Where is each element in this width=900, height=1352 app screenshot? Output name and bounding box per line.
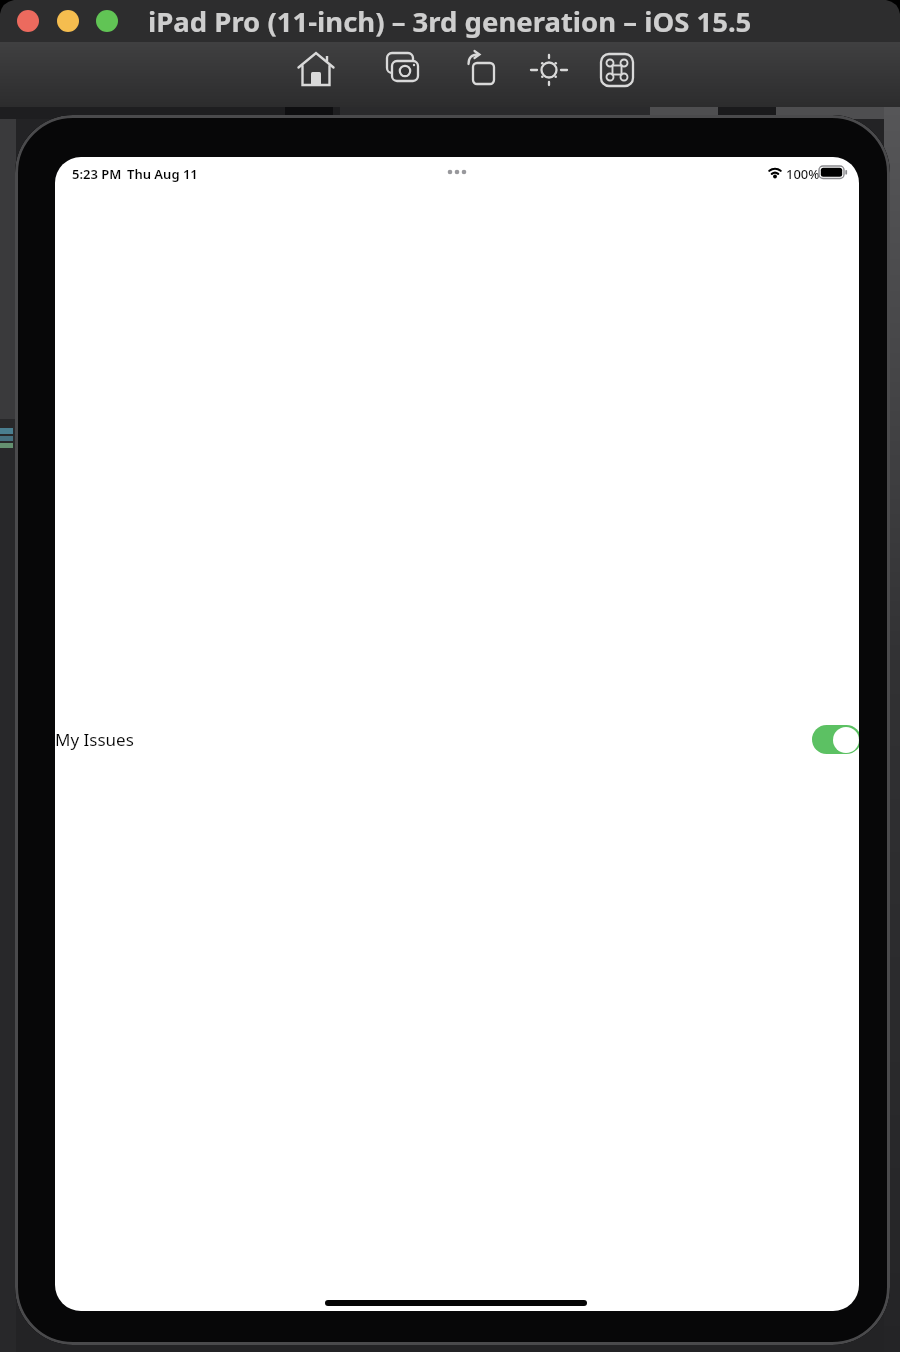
button[interactable] <box>57 10 79 32</box>
staticText: 100% <box>786 165 820 183</box>
staticText: Thu Aug 11 <box>127 165 198 183</box>
button[interactable] <box>597 50 637 90</box>
staticText: 5:23 PM <box>72 165 122 183</box>
staticText: My Issues <box>55 728 134 751</box>
button[interactable]: My Issues <box>55 723 859 755</box>
button[interactable] <box>296 50 336 90</box>
button[interactable] <box>529 50 569 90</box>
button[interactable] <box>17 10 39 32</box>
button[interactable] <box>464 50 504 90</box>
button[interactable] <box>96 10 118 32</box>
button[interactable] <box>812 725 859 754</box>
button[interactable] <box>382 50 422 90</box>
staticText: iPad Pro (11-inch) – 3rd generation – iO… <box>148 3 752 40</box>
